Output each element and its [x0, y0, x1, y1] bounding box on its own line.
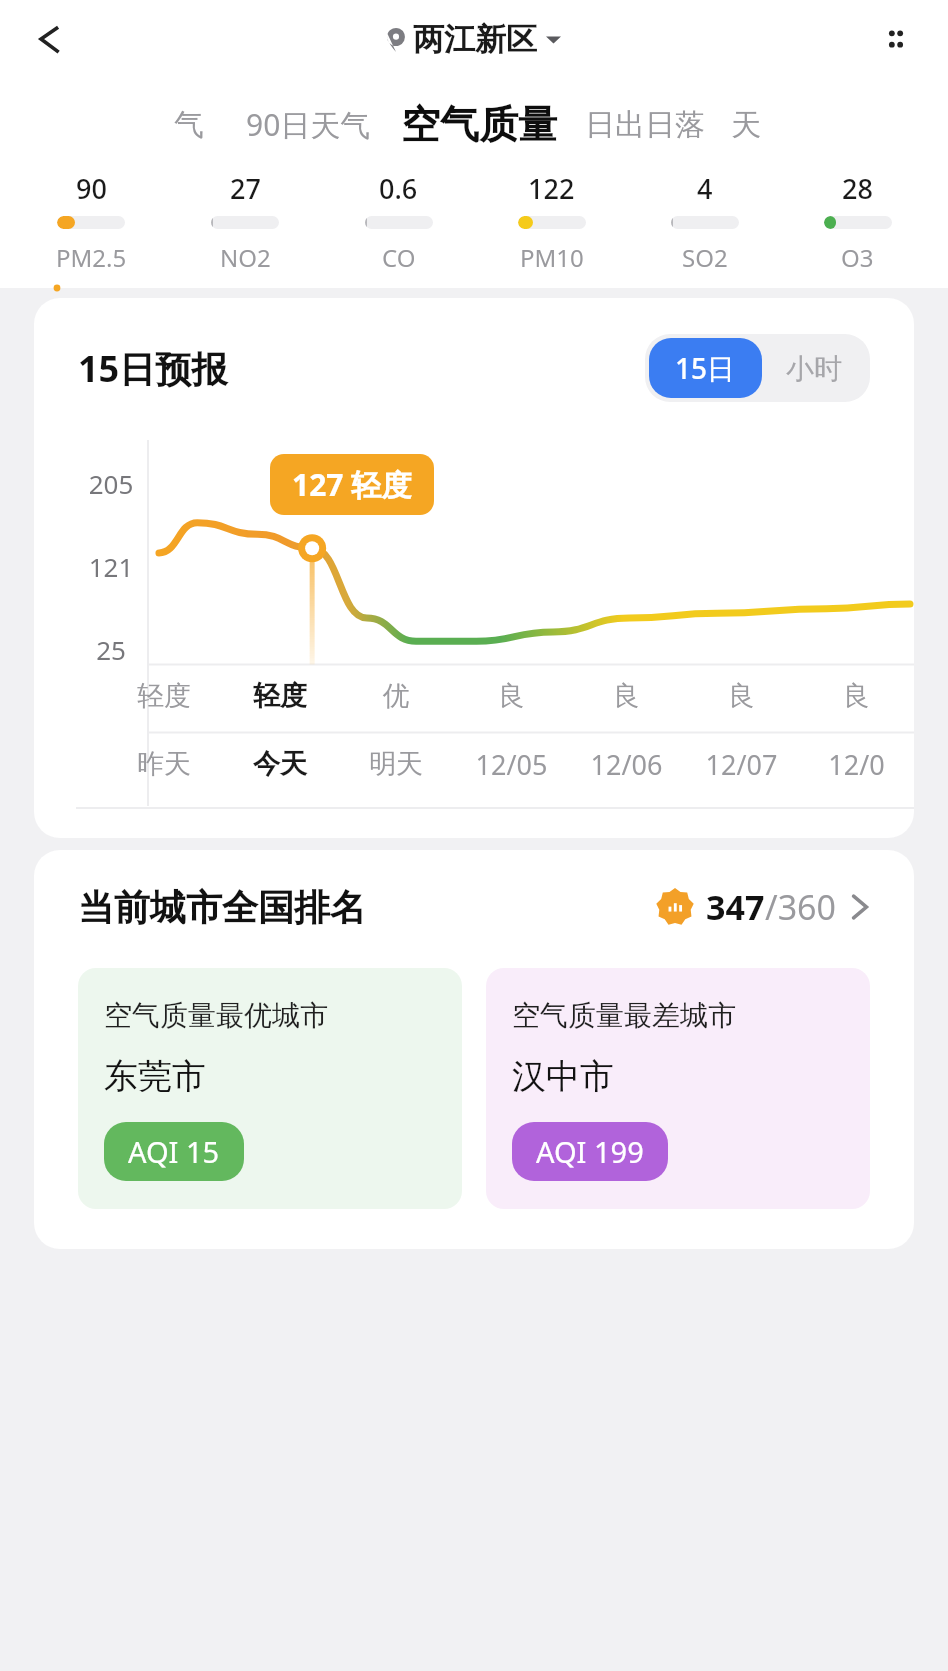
- button[interactable]: 空气质量最优城市: [78, 968, 462, 1209]
- button[interactable]: 27: [168, 170, 322, 274]
- staticText: 27: [230, 170, 261, 207]
- staticText: 东莞市: [104, 1055, 206, 1098]
- button[interactable]: 小时: [762, 340, 866, 397]
- staticText: 小时: [786, 351, 842, 386]
- staticText: 优: [338, 679, 454, 713]
- button[interactable]: 4: [628, 170, 781, 274]
- staticText: 当前城市全国排名: [78, 885, 366, 930]
- staticText: 347: [706, 884, 765, 930]
- button[interactable]: 两江新区: [387, 20, 561, 59]
- staticText: AQI 15: [128, 1132, 220, 1171]
- staticText: 90: [76, 170, 107, 207]
- staticText: SO2: [682, 241, 728, 274]
- staticText: 12/06: [569, 746, 684, 783]
- staticText: 轻度: [222, 679, 338, 713]
- button[interactable]: 日出日落: [585, 106, 705, 144]
- other: Open ranking: [850, 890, 870, 924]
- staticText: 两江新区: [413, 20, 537, 59]
- staticText: 12/07: [684, 746, 799, 783]
- staticText: 15日: [675, 349, 736, 387]
- staticText: 良: [454, 679, 569, 713]
- staticText: 0.6: [379, 170, 418, 207]
- staticText: 12/0: [799, 746, 914, 783]
- staticText: 汉中市: [512, 1055, 614, 1098]
- button[interactable]: 空气质量: [401, 100, 557, 149]
- staticText: 今天: [222, 747, 338, 781]
- button[interactable]: More options: [868, 11, 924, 67]
- staticText: O3: [841, 241, 874, 274]
- button[interactable]: 28: [781, 170, 934, 274]
- staticText: 12/05: [454, 746, 569, 783]
- staticText: PM10: [520, 241, 584, 274]
- staticText: NO2: [220, 241, 271, 274]
- staticText: 4: [697, 170, 713, 207]
- button[interactable]: 122: [475, 170, 628, 274]
- staticText: 昨天: [106, 747, 222, 781]
- button[interactable]: 90: [14, 170, 168, 274]
- staticText: 15日预报: [78, 344, 228, 393]
- button[interactable]: 当前城市全国排名: [34, 884, 914, 930]
- staticText: /360: [765, 884, 836, 930]
- staticText: 空气质量最差城市: [512, 998, 736, 1033]
- staticText: 轻度: [106, 679, 222, 713]
- staticText: 25: [76, 632, 146, 667]
- button[interactable]: 0.6: [322, 170, 475, 274]
- staticText: AQI 199: [536, 1132, 644, 1171]
- button[interactable]: 空气质量最差城市: [486, 968, 870, 1209]
- staticText: 良: [569, 679, 684, 713]
- button[interactable]: 天: [731, 106, 761, 144]
- staticText: 空气质量最优城市: [104, 998, 328, 1033]
- staticText: 122: [528, 170, 575, 207]
- staticText: 127 轻度: [292, 464, 412, 505]
- staticText: 良: [799, 679, 914, 713]
- staticText: 28: [842, 170, 873, 207]
- button[interactable]: 90日天气: [246, 104, 371, 145]
- button[interactable]: 15日: [649, 338, 762, 398]
- button[interactable]: Back: [22, 11, 78, 67]
- staticText: 205: [76, 466, 146, 501]
- staticText: PM2.5: [56, 241, 127, 274]
- button[interactable]: 气: [174, 106, 204, 144]
- staticText: 121: [76, 549, 146, 584]
- staticText: 良: [684, 679, 799, 713]
- staticText: 明天: [338, 747, 454, 781]
- staticText: CO: [382, 241, 416, 274]
